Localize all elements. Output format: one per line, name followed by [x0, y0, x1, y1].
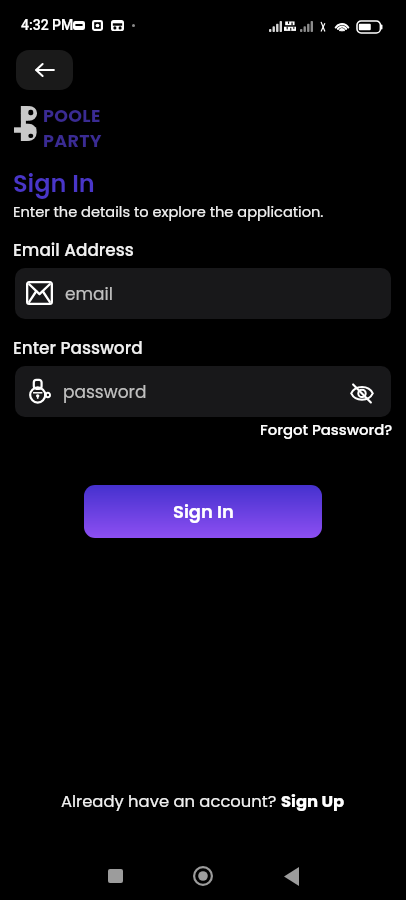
button[interactable]: Show password [349, 378, 377, 406]
staticText: email [65, 282, 113, 306]
button[interactable]: Home [179, 852, 227, 900]
button[interactable]: email [15, 268, 391, 319]
staticText: POOLE [43, 104, 101, 129]
button[interactable]: Recents [91, 852, 139, 900]
staticText: Email Address [13, 238, 134, 262]
staticText: Sign In [13, 167, 95, 201]
staticText: Sign In [173, 499, 234, 524]
staticText: Already have an account? [61, 790, 281, 813]
button[interactable]: Already have an account? [0, 790, 406, 813]
staticText: Sign Up [281, 790, 345, 813]
staticText: Forgot Password? [260, 419, 393, 440]
button[interactable]: Back [16, 50, 73, 90]
staticText: Enter Password [13, 336, 143, 360]
button[interactable]: password [15, 366, 391, 417]
staticText: Enter the details to explore the applica… [13, 202, 324, 222]
staticText: PARTY [43, 129, 102, 154]
staticText: password [63, 380, 147, 404]
button[interactable]: Back [267, 852, 315, 900]
staticText: 4:32 PM [21, 17, 74, 33]
button[interactable]: Forgot Password? [260, 419, 393, 440]
button[interactable]: Sign In [84, 485, 322, 538]
